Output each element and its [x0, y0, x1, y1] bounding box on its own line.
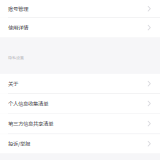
button[interactable]: 关于	[0, 74, 160, 93]
staticText: 使用详情	[8, 24, 28, 31]
staticText: 第三方信息共享清单	[8, 120, 53, 127]
button[interactable]: 使用详情	[0, 18, 160, 37]
staticText: 关于	[8, 80, 18, 88]
staticText: 个人信息收集清单	[8, 99, 48, 107]
button[interactable]: 第三方信息共享清单	[0, 114, 160, 134]
staticText: 账号管理	[8, 5, 28, 13]
staticText: 隐私设置	[8, 55, 24, 60]
button[interactable]: 账号管理	[0, 0, 160, 17]
button[interactable]: 投诉/举报	[0, 134, 160, 153]
button[interactable]: 个人信息收集清单	[0, 94, 160, 113]
staticText: 投诉/举报	[8, 140, 30, 148]
